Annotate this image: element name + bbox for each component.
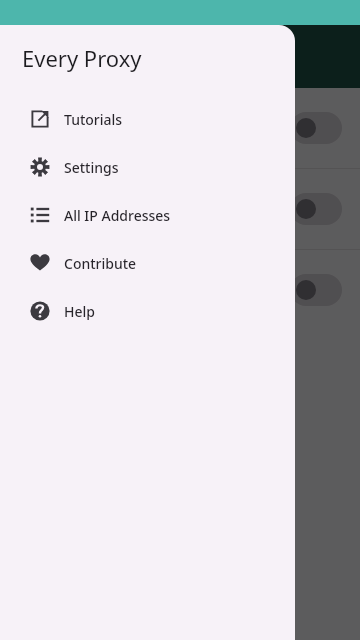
button[interactable] xyxy=(0,88,360,168)
button[interactable] xyxy=(290,274,342,306)
staticText: Contribute xyxy=(64,254,137,273)
staticText: Tutorials xyxy=(64,110,123,129)
staticText: Help xyxy=(64,302,95,321)
button[interactable] xyxy=(0,169,360,249)
button[interactable]: Contribute xyxy=(0,239,295,287)
button[interactable]: Tutorials xyxy=(0,95,295,143)
button[interactable] xyxy=(290,112,342,144)
button[interactable] xyxy=(0,250,360,330)
button[interactable]: All IP Addresses xyxy=(0,191,295,239)
button[interactable]: Settings xyxy=(0,143,295,191)
button[interactable]: Help xyxy=(0,287,295,335)
staticText: Every Proxy xyxy=(22,43,142,73)
staticText: Settings xyxy=(64,158,119,177)
button[interactable] xyxy=(0,25,360,640)
staticText: All IP Addresses xyxy=(64,206,171,225)
button: Every Proxy xyxy=(0,25,295,640)
button[interactable] xyxy=(290,193,342,225)
